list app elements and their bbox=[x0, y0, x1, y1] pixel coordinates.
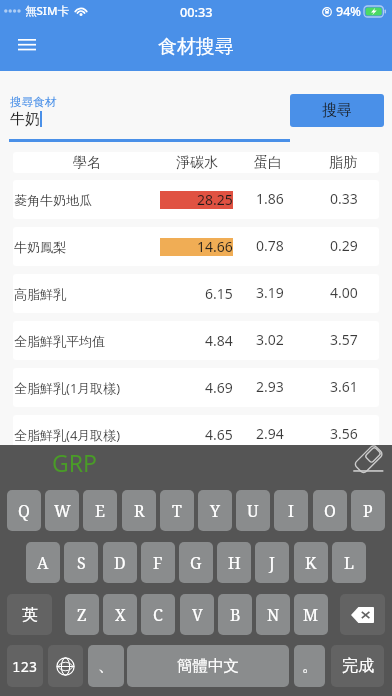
staticText: 3.02 bbox=[256, 330, 284, 349]
button[interactable]: K bbox=[294, 542, 328, 583]
button[interactable]: 高脂鮮乳 bbox=[13, 274, 379, 313]
button[interactable]: Q bbox=[7, 490, 41, 531]
staticText: V bbox=[192, 604, 203, 626]
button[interactable]: Backspace bbox=[340, 594, 385, 635]
staticText: R bbox=[134, 500, 145, 522]
staticText: 3.61 bbox=[330, 377, 358, 396]
button[interactable]: J bbox=[255, 542, 289, 583]
staticText: H bbox=[228, 552, 241, 574]
staticText: 食材搜尋 bbox=[158, 35, 234, 59]
button[interactable]: D bbox=[103, 542, 137, 583]
staticText: 牛奶鳳梨 bbox=[14, 239, 66, 255]
staticText: 2.94 bbox=[256, 424, 284, 443]
staticText: P bbox=[363, 500, 373, 522]
button[interactable]: B bbox=[218, 594, 252, 635]
staticText: I bbox=[288, 500, 294, 522]
button[interactable]: 全脂鮮乳平均值 bbox=[13, 321, 379, 360]
button[interactable]: A bbox=[26, 542, 60, 583]
button[interactable]: C bbox=[141, 594, 175, 635]
staticText: B bbox=[230, 604, 241, 626]
staticText: C bbox=[153, 604, 163, 626]
button[interactable]: R bbox=[122, 490, 156, 531]
staticText: 搜尋 bbox=[322, 101, 352, 120]
staticText: 。 bbox=[302, 656, 318, 676]
button[interactable]: Change keyboard bbox=[48, 645, 83, 687]
staticText: 搜尋食材 bbox=[10, 95, 57, 110]
staticText: 4.65 bbox=[205, 425, 233, 443]
button[interactable]: Y bbox=[198, 490, 232, 531]
button[interactable]: 學名 bbox=[13, 152, 379, 173]
staticText: 3.19 bbox=[256, 283, 284, 302]
button[interactable]: N bbox=[256, 594, 290, 635]
staticText: 0.29 bbox=[330, 236, 358, 255]
staticText: N bbox=[267, 604, 280, 626]
staticText: 4.00 bbox=[330, 283, 358, 302]
button[interactable]: M bbox=[294, 594, 328, 635]
button[interactable]: S bbox=[64, 542, 98, 583]
staticText: 00:33 bbox=[180, 3, 213, 20]
staticText: 123 bbox=[12, 657, 38, 676]
staticText: 英 bbox=[22, 605, 38, 625]
staticText: 、 bbox=[98, 656, 114, 676]
button[interactable]: 、 bbox=[88, 645, 124, 687]
staticText: J bbox=[269, 552, 275, 574]
staticText: 簡體中文 bbox=[177, 656, 239, 676]
staticText: Z bbox=[77, 604, 87, 626]
button[interactable]: I bbox=[274, 490, 308, 531]
staticText: 全脂鮮乳平均值 bbox=[14, 333, 105, 349]
button[interactable]: X bbox=[103, 594, 137, 635]
button[interactable]: 。 bbox=[294, 645, 325, 687]
staticText: X bbox=[115, 604, 126, 626]
staticText: Y bbox=[210, 500, 221, 522]
button[interactable]: P bbox=[351, 490, 385, 531]
button[interactable]: U bbox=[236, 490, 270, 531]
staticText: U bbox=[247, 500, 259, 522]
staticText: 高脂鮮乳 bbox=[14, 286, 66, 302]
button[interactable]: G bbox=[179, 542, 213, 583]
staticText: 牛奶 bbox=[10, 110, 40, 129]
staticText: T bbox=[172, 500, 182, 522]
staticText: 0.78 bbox=[256, 236, 284, 255]
button[interactable]: 菱角牛奶地瓜 bbox=[13, 180, 379, 219]
button[interactable]: F bbox=[141, 542, 175, 583]
staticText: K bbox=[305, 552, 317, 574]
staticText: 1.86 bbox=[256, 189, 284, 208]
staticText: D bbox=[114, 552, 126, 574]
button[interactable]: 全脂鮮乳(4月取樣) bbox=[13, 415, 379, 454]
staticText: Q bbox=[18, 500, 30, 522]
staticText: 淨碳水 bbox=[176, 154, 218, 172]
staticText: L bbox=[344, 552, 354, 574]
staticText: 脂肪 bbox=[329, 154, 357, 172]
staticText: 蛋白 bbox=[254, 154, 282, 172]
staticText: 4.69 bbox=[205, 378, 233, 396]
button[interactable]: 完成 bbox=[331, 645, 384, 687]
button[interactable]: V bbox=[180, 594, 214, 635]
button[interactable]: 123 bbox=[7, 645, 43, 687]
button[interactable]: 全脂鮮乳(1月取樣) bbox=[13, 368, 379, 407]
staticText: 菱角牛奶地瓜 bbox=[14, 192, 92, 208]
button[interactable]: T bbox=[160, 490, 194, 531]
staticText: E bbox=[95, 500, 105, 522]
staticText: 0.33 bbox=[330, 189, 358, 208]
button[interactable]: O bbox=[313, 490, 347, 531]
button[interactable]: 搜尋 bbox=[290, 94, 384, 127]
staticText: 3.57 bbox=[330, 330, 358, 349]
staticText: 完成 bbox=[342, 656, 374, 676]
button[interactable]: E bbox=[83, 490, 117, 531]
staticText: 無SIM卡 bbox=[25, 3, 69, 19]
staticText: 6.15 bbox=[205, 284, 233, 302]
button[interactable]: 英 bbox=[7, 594, 52, 635]
button[interactable]: 牛奶鳳梨 bbox=[13, 227, 379, 266]
button[interactable]: Erase bbox=[352, 448, 384, 476]
button[interactable]: L bbox=[332, 542, 366, 583]
staticText: O bbox=[324, 500, 336, 522]
staticText: 4.84 bbox=[205, 331, 233, 349]
staticText: 28.25 bbox=[197, 190, 233, 208]
staticText: M bbox=[303, 604, 319, 626]
staticText: 2.93 bbox=[256, 377, 284, 396]
button[interactable]: 簡體中文 bbox=[127, 645, 289, 687]
button[interactable]: H bbox=[217, 542, 251, 583]
button[interactable]: Z bbox=[65, 594, 99, 635]
button[interactable]: Menu bbox=[8, 31, 46, 59]
button[interactable]: W bbox=[45, 490, 79, 531]
